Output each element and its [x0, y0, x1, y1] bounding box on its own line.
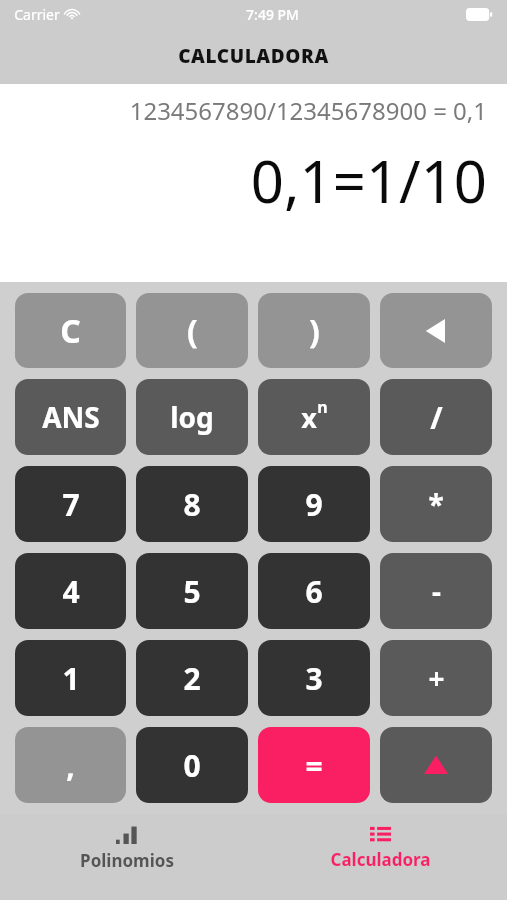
- button[interactable]: 5: [136, 553, 248, 629]
- button[interactable]: C: [15, 293, 126, 368]
- staticText: 0: [183, 745, 201, 786]
- staticText: 9: [305, 484, 323, 525]
- staticText: ): [309, 309, 320, 353]
- staticText: 3: [305, 658, 323, 699]
- staticText: ANS: [42, 398, 100, 436]
- button[interactable]: Delete: [380, 293, 492, 368]
- staticText: 1234567890/12345678900 = 0,1: [129, 94, 487, 127]
- button[interactable]: =: [258, 727, 370, 803]
- button[interactable]: 1: [15, 640, 126, 716]
- button[interactable]: Polinomios: [0, 814, 253, 900]
- button[interactable]: Calculadora: [253, 814, 507, 900]
- button[interactable]: ANS: [15, 379, 126, 455]
- staticText: 4: [62, 571, 80, 612]
- staticText: x: [301, 399, 317, 436]
- staticText: CALCULADORA: [178, 43, 329, 69]
- staticText: 7: [62, 484, 80, 525]
- staticText: *: [428, 485, 444, 523]
- staticText: 7:49 PM: [246, 5, 299, 24]
- staticText: (: [187, 309, 198, 353]
- button[interactable]: (: [136, 293, 248, 368]
- staticText: Polinomios: [80, 849, 174, 872]
- button[interactable]: 2: [136, 640, 248, 716]
- button[interactable]: 6: [258, 553, 370, 629]
- button[interactable]: 8: [136, 466, 248, 542]
- button[interactable]: ,: [15, 727, 126, 803]
- staticText: /: [430, 397, 443, 438]
- staticText: 8: [183, 484, 201, 525]
- staticText: log: [170, 398, 214, 436]
- staticText: Carrier: [14, 5, 60, 24]
- staticText: 5: [183, 571, 201, 612]
- button[interactable]: Up: [380, 727, 492, 803]
- button[interactable]: 3: [258, 640, 370, 716]
- staticText: C: [60, 309, 81, 353]
- staticText: Calculadora: [330, 848, 431, 871]
- staticText: 1: [62, 658, 80, 699]
- staticText: 6: [305, 571, 323, 612]
- button[interactable]: /: [380, 379, 492, 455]
- button[interactable]: +: [380, 640, 492, 716]
- button[interactable]: 0: [136, 727, 248, 803]
- staticText: +: [428, 659, 445, 697]
- staticText: ,: [66, 745, 75, 786]
- button[interactable]: *: [380, 466, 492, 542]
- button[interactable]: -: [380, 553, 492, 629]
- button[interactable]: 7: [15, 466, 126, 542]
- button[interactable]: x to the power n: [258, 379, 370, 455]
- button[interactable]: 4: [15, 553, 126, 629]
- button[interactable]: ): [258, 293, 370, 368]
- staticText: -: [432, 572, 441, 610]
- staticText: =: [305, 745, 323, 786]
- staticText: 0,1=1/10: [250, 141, 487, 220]
- staticText: n: [317, 396, 328, 418]
- button[interactable]: log: [136, 379, 248, 455]
- staticText: 2: [183, 658, 201, 699]
- button[interactable]: 9: [258, 466, 370, 542]
